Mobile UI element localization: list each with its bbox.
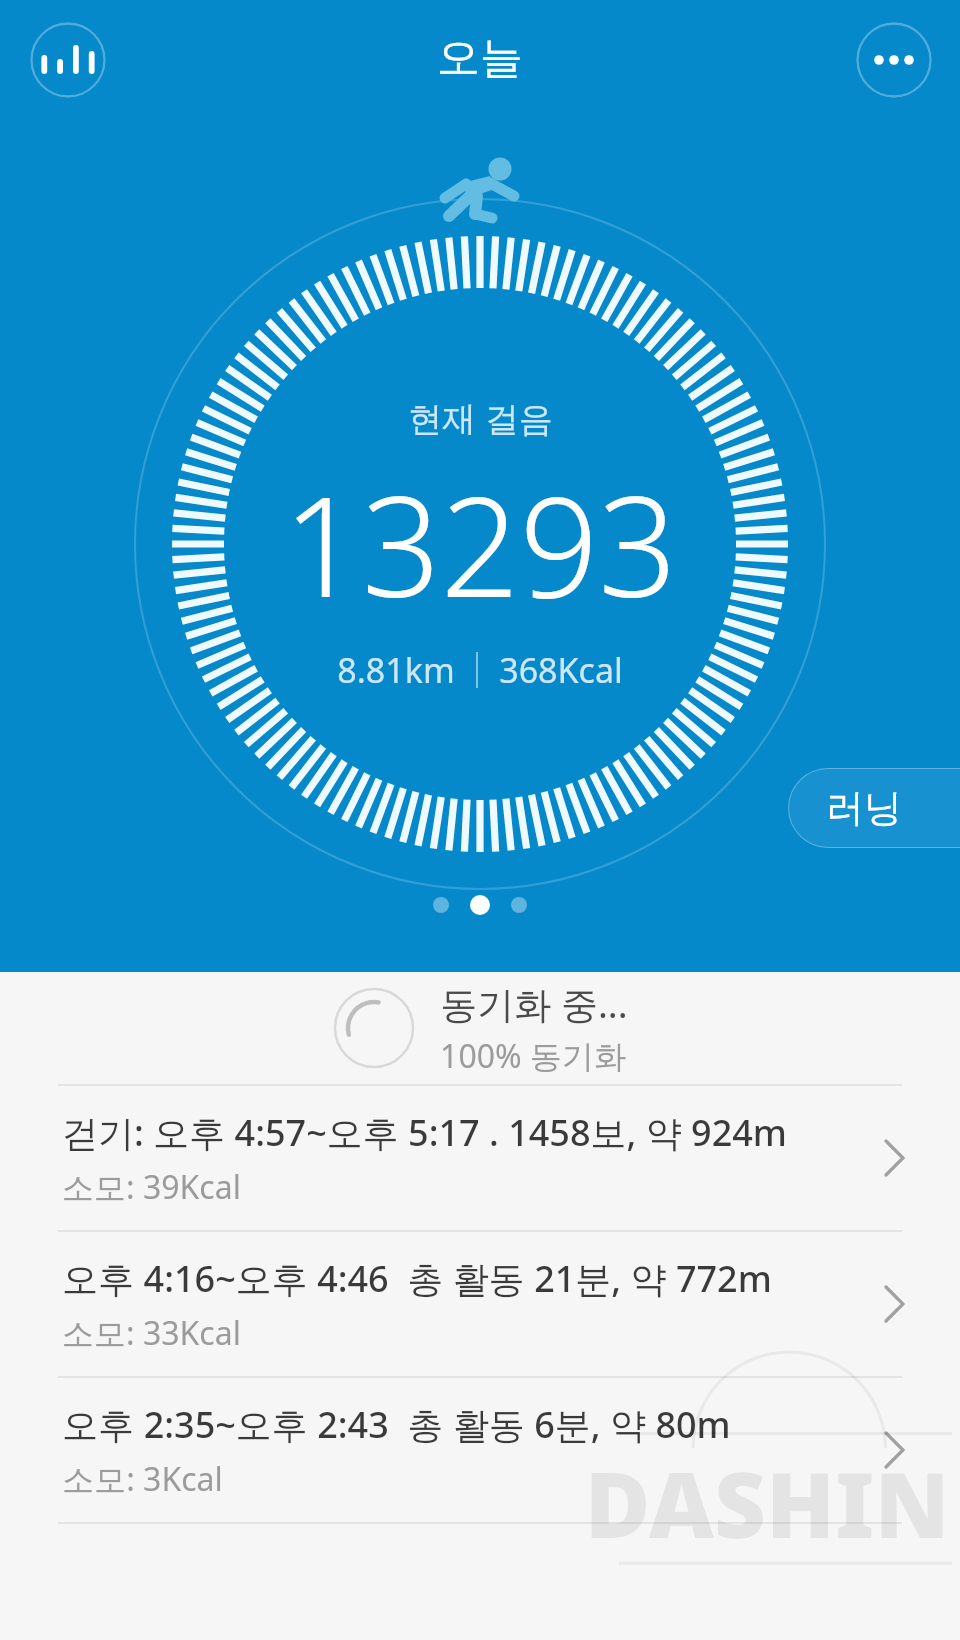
staticText: 러닝 <box>826 784 902 832</box>
staticText: 오후 4:16~오후 4:46 총 활동 21분, 약 772m <box>62 1254 772 1303</box>
button[interactable]: 걷기: 오후 4:57~오후 5:17 . 1458보, 약 924m <box>0 1086 960 1230</box>
button[interactable]: Statistics <box>30 22 106 98</box>
staticText: 368Kcal <box>499 647 623 693</box>
staticText: 걷기: 오후 4:57~오후 5:17 . 1458보, 약 924m <box>62 1108 787 1157</box>
button[interactable]: 오후 2:35~오후 2:43 총 활동 6분, 약 80m <box>0 1378 960 1522</box>
button[interactable]: 오후 4:16~오후 4:46 총 활동 21분, 약 772m <box>0 1232 960 1376</box>
staticText: 100% 동기화 <box>440 1034 626 1078</box>
staticText: 오후 2:35~오후 2:43 총 활동 6분, 약 80m <box>62 1400 731 1449</box>
staticText: 오늘 <box>437 31 523 85</box>
staticText: 소모: 3Kcal <box>62 1457 223 1501</box>
staticText: 소모: 33Kcal <box>62 1311 241 1355</box>
button[interactable]: More options <box>856 22 932 98</box>
staticText: 현재 걸음 <box>408 395 553 441</box>
button[interactable]: 러닝 <box>788 768 960 848</box>
staticText: 동기화 중... <box>440 978 628 1029</box>
staticText: DASHIN <box>584 1442 950 1565</box>
staticText: 8.81km <box>337 647 455 693</box>
staticText: 소모: 39Kcal <box>62 1165 241 1209</box>
button[interactable]: 동기화 중... <box>0 972 960 1084</box>
staticText: 13293 <box>283 449 677 637</box>
